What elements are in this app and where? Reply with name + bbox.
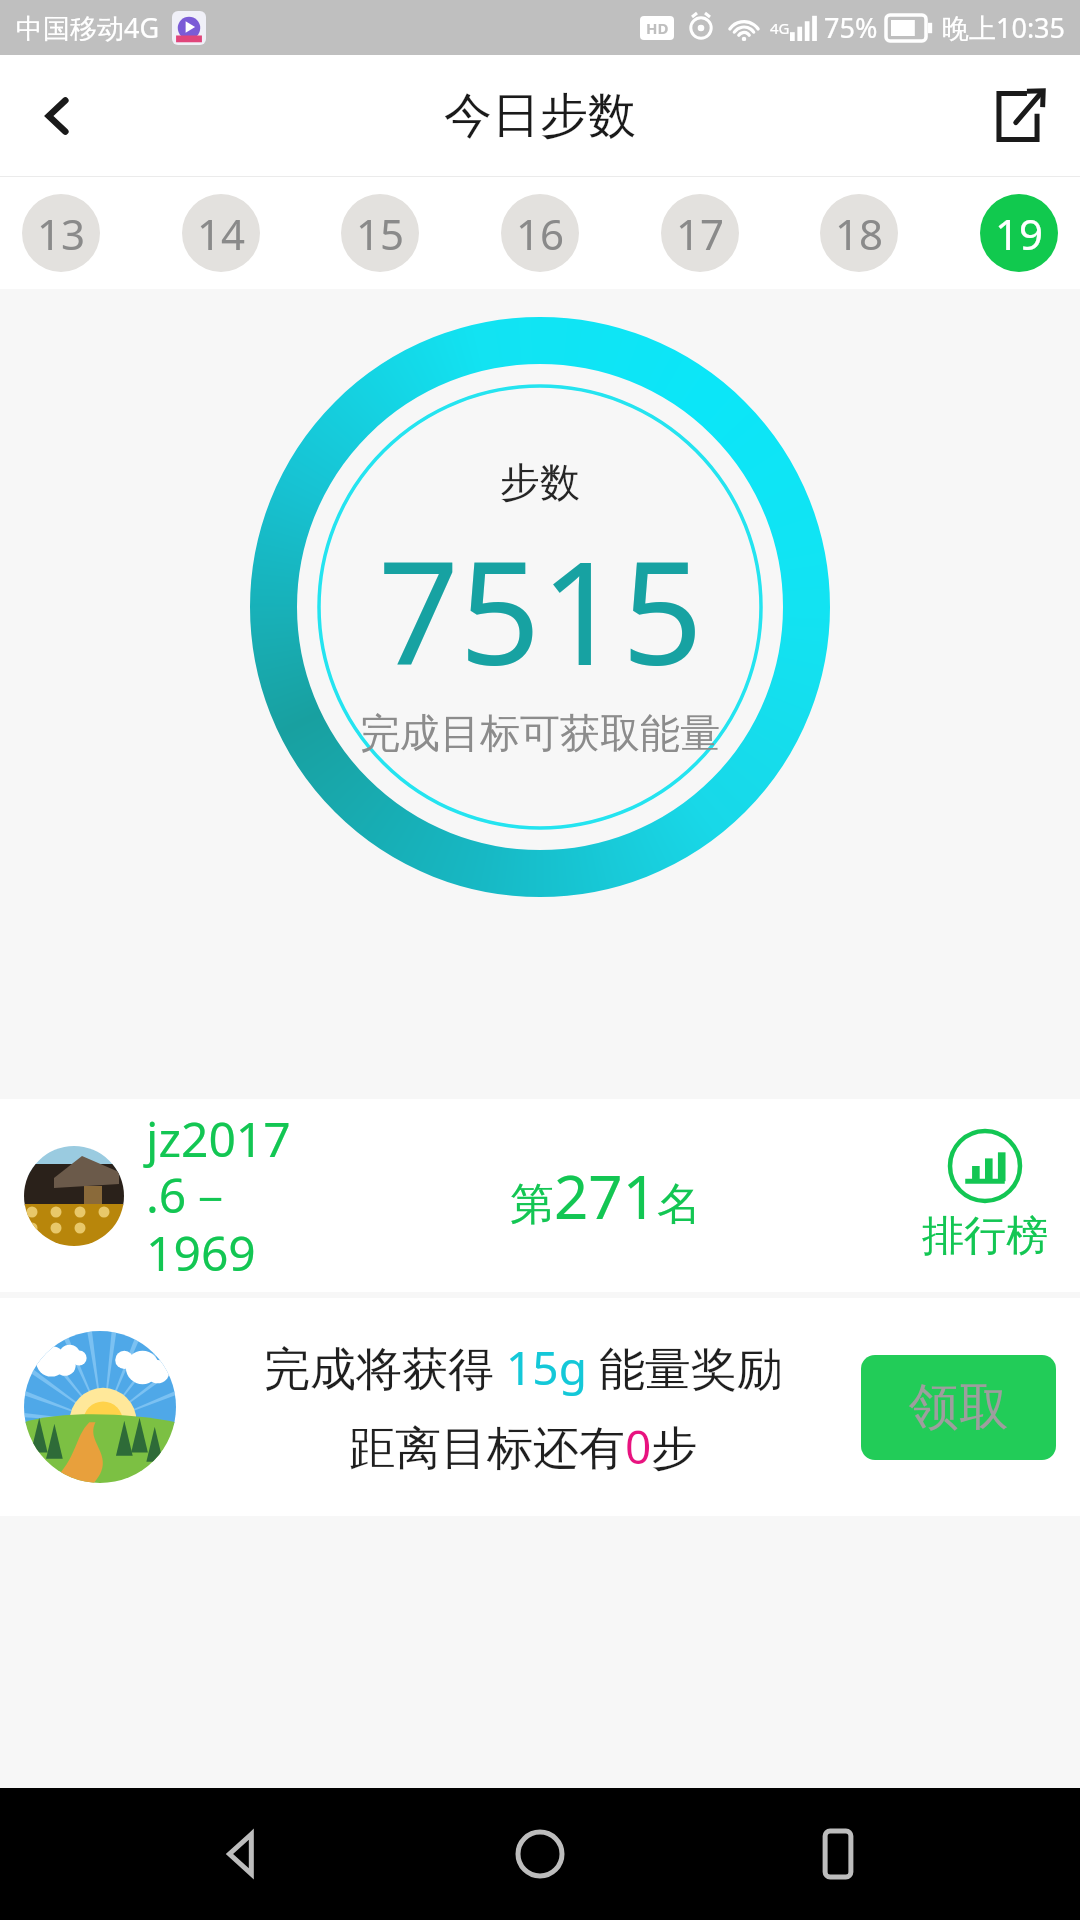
button[interactable]: 返回: [188, 1799, 298, 1909]
staticText: 步数: [500, 457, 580, 507]
button[interactable]: 15: [341, 194, 419, 272]
staticText: 今日步数: [444, 86, 636, 146]
staticText: 7515: [378, 513, 703, 706]
button[interactable]: 13: [22, 194, 100, 272]
staticText: 领取: [909, 1376, 1009, 1439]
staticText: 第271名: [510, 1155, 701, 1237]
button[interactable]: 主页: [485, 1799, 595, 1909]
staticText: 17: [676, 205, 725, 262]
button[interactable]: 17: [661, 194, 739, 272]
button[interactable]: jz2017.6－1969: [0, 1099, 1080, 1292]
staticText: 排行榜: [922, 1210, 1048, 1263]
staticText: 13: [37, 205, 86, 262]
staticText: 15: [356, 205, 405, 262]
staticText: 晚上10:35: [942, 9, 1066, 46]
button[interactable]: 16: [501, 194, 579, 272]
button[interactable]: 排行榜: [914, 1128, 1056, 1263]
button[interactable]: 最近任务: [783, 1799, 893, 1909]
staticText: jz2017.6－1969: [146, 1106, 296, 1285]
button[interactable]: 分享: [978, 76, 1058, 156]
staticText: 完成目标可获取能量: [360, 708, 720, 758]
staticText: 完成将获得 15g 能量奖励: [264, 1336, 783, 1399]
staticText: 16: [516, 205, 565, 262]
staticText: 19: [995, 205, 1044, 262]
staticText: 距离目标还有0步: [349, 1415, 698, 1478]
staticText: HD: [646, 18, 669, 38]
staticText: 中国移动4G: [16, 9, 160, 46]
staticText: 18: [835, 205, 884, 262]
staticText: 75%: [824, 9, 878, 46]
staticText: 4G: [770, 18, 790, 38]
button[interactable]: 返回: [18, 76, 98, 156]
button[interactable]: 18: [820, 194, 898, 272]
staticText: 14: [197, 205, 246, 262]
button[interactable]: 19: [980, 194, 1058, 272]
button[interactable]: 14: [182, 194, 260, 272]
button[interactable]: 领取: [861, 1355, 1056, 1460]
